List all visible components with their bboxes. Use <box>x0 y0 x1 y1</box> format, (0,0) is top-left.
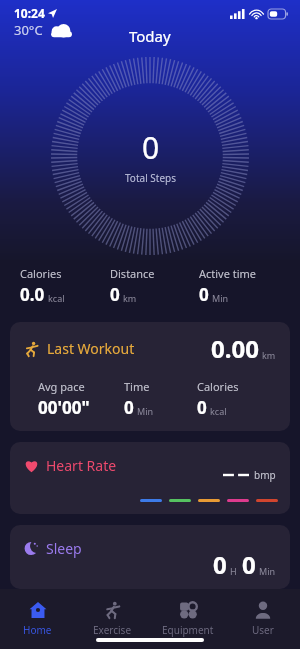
staticText: 0 <box>110 283 120 306</box>
staticText: 0.0 <box>20 283 45 306</box>
button[interactable]: Equipment <box>150 597 225 641</box>
staticText: Distance <box>110 266 155 281</box>
staticText: 0 <box>199 283 209 306</box>
staticText: km <box>123 292 137 304</box>
staticText: User <box>252 623 274 637</box>
staticText: Calories <box>197 379 239 394</box>
staticText: 0 <box>213 548 227 581</box>
staticText: Total Steps <box>125 171 176 185</box>
staticText: Active time <box>199 266 257 281</box>
staticText: 0 <box>142 127 160 168</box>
staticText: 0 <box>197 396 207 419</box>
button[interactable]: Home <box>0 597 75 641</box>
button[interactable]: User <box>225 597 300 641</box>
staticText: km <box>262 349 276 361</box>
staticText: Min <box>212 292 229 304</box>
staticText: Min <box>137 405 154 417</box>
staticText: Last Workout <box>47 339 135 358</box>
staticText: kcal <box>210 405 227 417</box>
staticText: 0.00 <box>211 332 259 365</box>
staticText: Today <box>129 26 171 46</box>
button[interactable]: Heart Rate <box>10 442 290 514</box>
staticText: 00'00" <box>38 396 90 419</box>
staticText: 30°C <box>14 21 43 39</box>
staticText: Exercise <box>93 623 132 637</box>
staticText: Sleep <box>46 539 82 558</box>
staticText: Heart Rate <box>46 456 117 475</box>
button[interactable]: Exercise <box>75 597 150 641</box>
staticText: Home <box>23 623 52 637</box>
staticText: 0 <box>124 396 134 419</box>
staticText: 10:24 <box>14 5 45 21</box>
staticText: Time <box>124 379 150 394</box>
staticText: Calories <box>20 266 62 281</box>
staticText: Avg pace <box>38 379 85 394</box>
staticText: kcal <box>48 292 65 304</box>
button[interactable]: Sleep <box>10 525 290 589</box>
staticText: 0 <box>242 548 256 581</box>
staticText: Min <box>259 565 276 577</box>
staticText: H <box>230 565 237 577</box>
button[interactable]: Last Workout <box>10 322 290 431</box>
staticText: Equipment <box>162 623 214 637</box>
staticText: bmp <box>254 468 276 482</box>
